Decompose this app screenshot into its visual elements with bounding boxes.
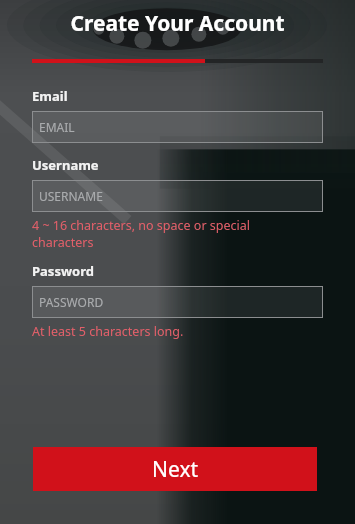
button[interactable]: USERNAME (32, 180, 323, 212)
staticText: Create Your Account (0, 9, 355, 38)
button[interactable]: EMAIL (32, 111, 323, 143)
staticText: Email (32, 87, 68, 105)
button[interactable]: PASSWORD (32, 286, 323, 318)
staticText: PASSWORD (39, 294, 104, 310)
staticText: At least 5 characters long. (32, 323, 184, 340)
button[interactable]: Next (33, 447, 317, 491)
staticText: Password (32, 262, 94, 280)
staticText: 4 ~ 16 characters, no space or special c… (32, 217, 287, 250)
staticText: Username (32, 156, 99, 174)
staticText: Next (152, 455, 199, 484)
staticText: USERNAME (39, 188, 103, 204)
staticText: EMAIL (39, 119, 75, 135)
